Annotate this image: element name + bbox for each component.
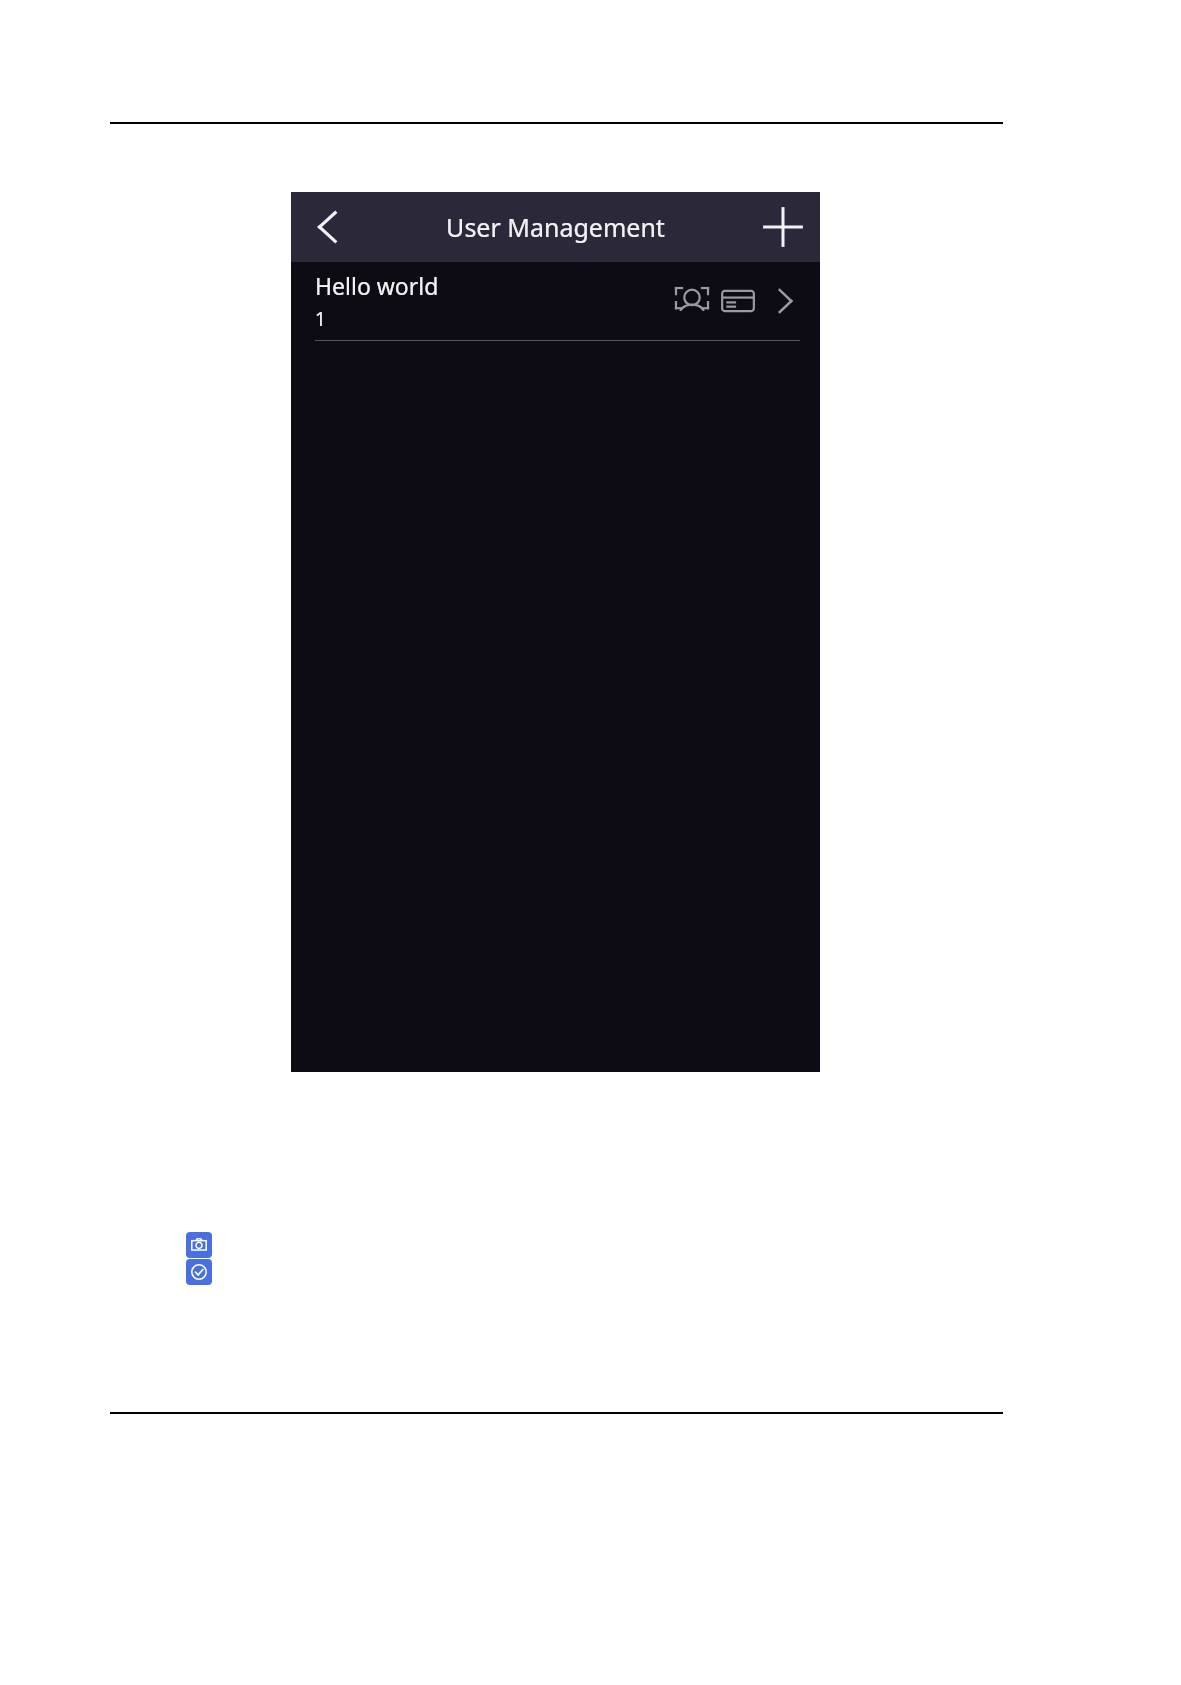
- button[interactable]: Note: [186, 1259, 212, 1285]
- button[interactable]: Camera note: [186, 1232, 212, 1258]
- staticText: User Management: [446, 210, 665, 244]
- button[interactable]: Add user: [754, 198, 812, 256]
- button[interactable]: Back: [301, 199, 357, 255]
- staticText: Hello world: [315, 270, 439, 301]
- button[interactable]: Hello world: [291, 262, 820, 341]
- staticText: 1: [315, 306, 326, 332]
